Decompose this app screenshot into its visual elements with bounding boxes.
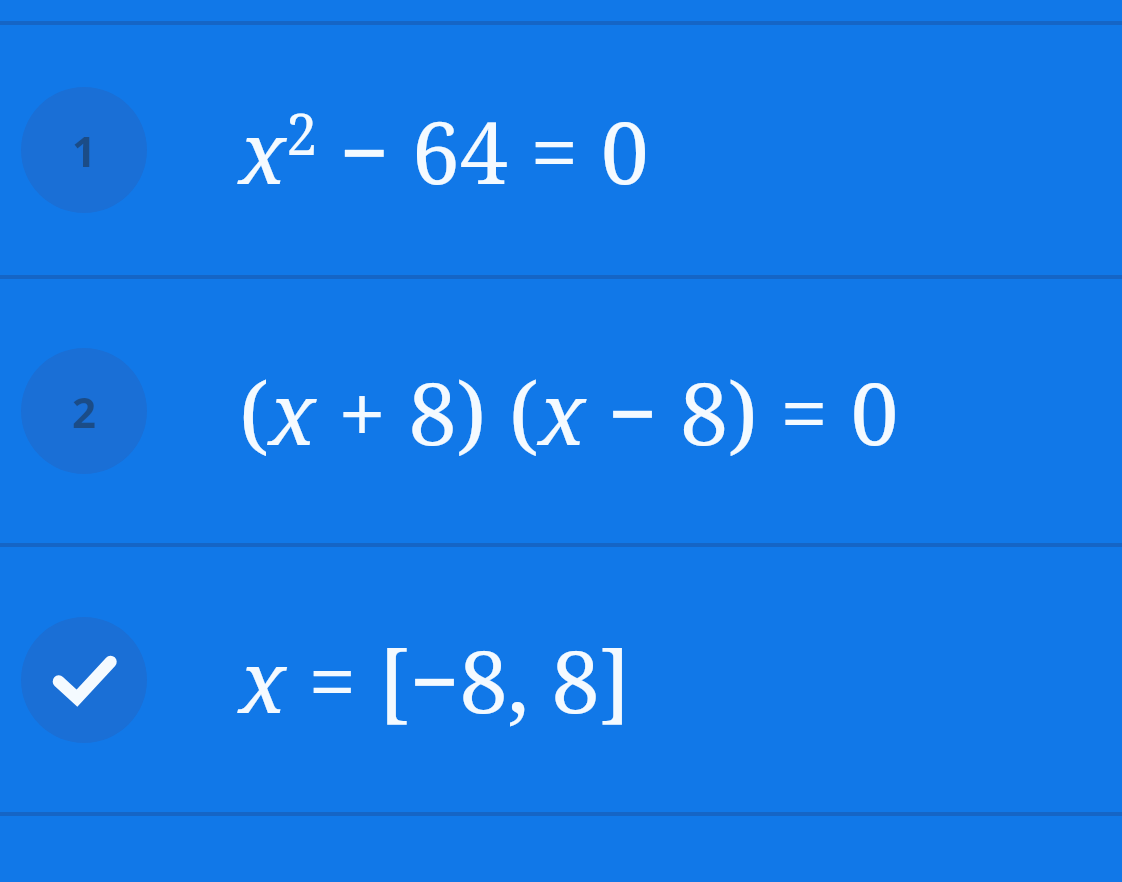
button[interactable]: Step 1: x squared minus 64 equals 0 — [0, 25, 1122, 275]
staticText: 1 — [72, 122, 97, 179]
staticText: 2 — [72, 383, 97, 440]
button[interactable]: Step 2: open paren x plus 8 close paren … — [0, 279, 1122, 543]
staticText: x = [−8, 8] — [239, 621, 631, 738]
staticText: (x + 8) (x − 8) = 0 — [239, 353, 899, 470]
button[interactable]: Answer: x equals negative 8 and 8 — [0, 547, 1122, 812]
staticText: x2 − 64 = 0 — [239, 92, 649, 209]
